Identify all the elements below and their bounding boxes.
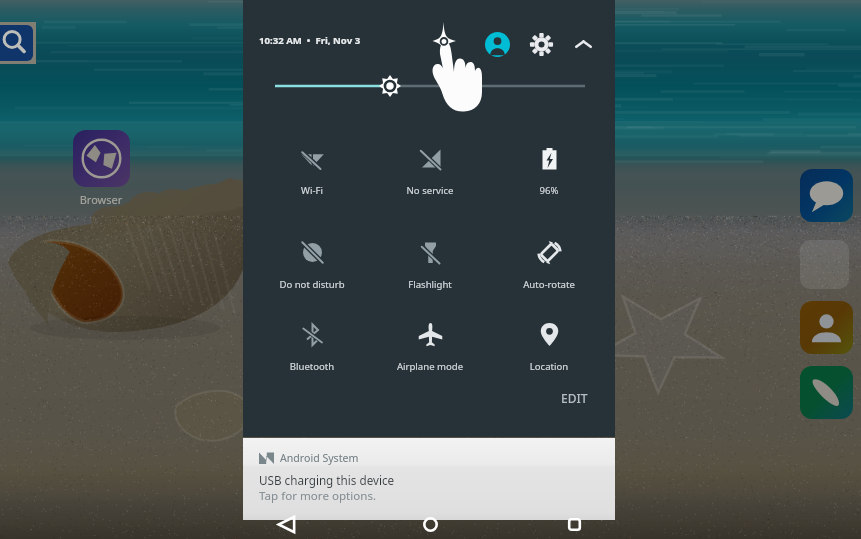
button[interactable]: Contacts: [800, 301, 853, 354]
button[interactable]: Auto-rotate: [502, 240, 596, 302]
button[interactable]: Bluetooth: [265, 322, 359, 384]
staticText: Wi-Fi: [265, 184, 359, 197]
button[interactable]: 10:32 AM • Fri, Nov 3: [259, 34, 361, 47]
button[interactable]: Messaging: [800, 169, 853, 222]
staticText: Auto-rotate: [502, 278, 596, 291]
staticText: USB charging this device: [259, 472, 395, 488]
staticText: 96%: [502, 184, 596, 197]
staticText: Flashlight: [383, 278, 477, 291]
staticText: 10:32 AM • Fri, Nov 3: [259, 34, 361, 47]
staticText: Android System: [280, 451, 359, 465]
button[interactable]: Search: [0, 25, 33, 61]
staticText: Location: [502, 360, 596, 373]
button[interactable]: Flashlight: [383, 240, 477, 302]
staticText: No service: [383, 184, 477, 197]
button[interactable]: User: [481, 28, 513, 60]
button[interactable]: Android System: [243, 438, 615, 520]
staticText: Airplane mode: [383, 360, 477, 373]
staticText: Do not disturb: [265, 278, 359, 291]
button[interactable]: Recents: [552, 506, 596, 539]
button[interactable]: Home: [408, 506, 452, 539]
staticText: EDIT: [561, 390, 588, 406]
button[interactable]: Phone: [800, 366, 853, 419]
button[interactable]: Browser: [71, 130, 131, 207]
button[interactable]: 96%: [502, 146, 596, 208]
button[interactable]: Location: [502, 322, 596, 384]
button[interactable]: No service: [383, 146, 477, 208]
button[interactable]: EDIT: [561, 390, 588, 406]
staticText: Browser: [71, 192, 131, 207]
button[interactable]: Collapse: [567, 28, 599, 60]
staticText: Bluetooth: [265, 360, 359, 373]
button[interactable]: Settings: [525, 28, 557, 60]
button[interactable]: Back: [264, 506, 308, 539]
staticText: Tap for more options.: [259, 488, 377, 504]
button[interactable]: Wi-Fi: [265, 146, 359, 208]
button[interactable]: Airplane mode: [383, 322, 477, 384]
button[interactable]: Do not disturb: [265, 240, 359, 302]
